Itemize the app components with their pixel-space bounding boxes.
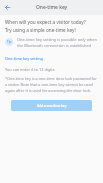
staticText: a visitor. Note that a one-time key cann… [5, 82, 93, 87]
staticText: One-time key setting [5, 56, 43, 61]
staticText: You can enter 4 to 12 digits [5, 67, 55, 72]
staticText: Add a one-time key [37, 104, 67, 108]
staticText: the Bluetooth connection is established [17, 43, 92, 48]
staticText: again after it is used for accessing the… [5, 88, 91, 93]
staticText: One-time key [36, 4, 68, 11]
staticText: One-time key setting is possible only wh… [17, 37, 97, 42]
staticText: When will you expect a visitor today? [5, 19, 86, 25]
button[interactable]: Add a one-time key [11, 100, 92, 111]
staticText: Try using a simple one-time key! [5, 27, 76, 33]
staticText: *One-time key is a one-time door lock pa… [5, 76, 97, 81]
staticText: Tip [7, 40, 12, 44]
button[interactable]: Back [0, 0, 15, 15]
